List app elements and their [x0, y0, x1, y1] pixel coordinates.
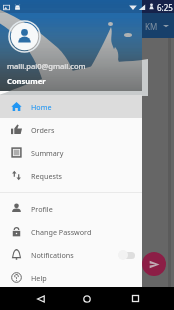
staticText: Home [31, 102, 52, 112]
staticText: Change Password [31, 227, 92, 237]
staticText: Notifications [31, 250, 74, 260]
staticText: KM [145, 21, 158, 32]
button[interactable]: Notifications [0, 243, 142, 266]
staticText: Summary [31, 148, 64, 158]
staticText: malli.pai0@gmail.com [7, 61, 86, 71]
button[interactable]: Profile [0, 197, 142, 220]
button[interactable]: Recent apps [128, 287, 142, 310]
staticText: Consumer [7, 76, 46, 86]
button[interactable]: Requests [0, 164, 142, 187]
button[interactable]: Home [0, 95, 142, 118]
button[interactable]: Orders [0, 118, 142, 141]
button[interactable]: KM [145, 19, 169, 33]
staticText: Profile [31, 204, 53, 214]
button[interactable]: Help [0, 266, 142, 289]
button[interactable]: Back [34, 287, 48, 310]
button[interactable]: Send [142, 252, 166, 276]
button[interactable]: Change Password [0, 220, 142, 243]
button[interactable]: Home [80, 287, 94, 310]
staticText: 6:25 [157, 2, 173, 11]
staticText: Orders [31, 125, 55, 135]
staticText: Help [31, 273, 47, 283]
button[interactable]: Account photo [8, 20, 41, 53]
staticText: Requests [31, 171, 62, 181]
button[interactable]: Summary [0, 141, 142, 164]
